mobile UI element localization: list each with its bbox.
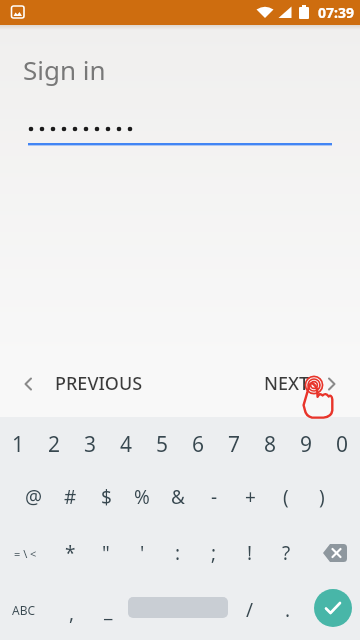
button[interactable]: 1 (0, 417, 36, 471)
button[interactable]: ? (268, 526, 304, 580)
button[interactable]: 2 (36, 417, 72, 471)
button[interactable]: ( (268, 470, 304, 524)
staticText: ; (211, 540, 217, 566)
staticText: ABC (12, 602, 36, 618)
staticText: % (134, 484, 150, 510)
staticText: ! (247, 540, 253, 566)
button[interactable]: 9 (288, 417, 324, 471)
staticText: . (285, 597, 291, 623)
staticText: 2 (48, 430, 61, 459)
button[interactable]: @ (16, 470, 52, 524)
staticText: / (246, 597, 254, 623)
button[interactable]: & (160, 470, 196, 524)
staticText: : (175, 540, 181, 566)
staticText: 0 (336, 430, 349, 459)
button[interactable]: 8 (252, 417, 288, 471)
button[interactable]: = \ < (0, 526, 50, 580)
button[interactable]: , (54, 586, 90, 640)
staticText: 5 (156, 430, 169, 459)
staticText: 1 (12, 430, 25, 459)
button[interactable]: NEXT (264, 371, 338, 396)
button[interactable] (128, 597, 228, 618)
staticText: 07:39 (318, 3, 354, 22)
staticText: ? (282, 540, 291, 566)
staticText: ' (140, 540, 145, 566)
staticText: 9 (300, 430, 313, 459)
staticText: & (171, 484, 185, 510)
staticText: $ (101, 484, 112, 510)
button[interactable]: 7 (216, 417, 252, 471)
button[interactable]: * (52, 526, 88, 580)
button[interactable]: 3 (72, 417, 108, 471)
staticText: ( (283, 484, 289, 510)
staticText: # (64, 484, 77, 510)
button[interactable]: 5 (144, 417, 180, 471)
button[interactable]: % (124, 470, 160, 524)
staticText: , (69, 600, 75, 626)
button[interactable]: _ (90, 583, 126, 637)
staticText: ) (319, 484, 325, 510)
button[interactable]: ; (196, 526, 232, 580)
staticText: 7 (228, 430, 241, 459)
button[interactable]: " (88, 526, 124, 580)
staticText: 4 (120, 430, 133, 459)
staticText: Sign in (23, 52, 106, 87)
button[interactable]: / (232, 583, 268, 637)
staticText: " (102, 540, 110, 566)
staticText: NEXT (264, 371, 310, 396)
staticText: 8 (264, 430, 277, 459)
staticText: = \ < (14, 546, 37, 561)
staticText: + (245, 484, 256, 510)
button[interactable]: # (52, 470, 88, 524)
staticText: _ (104, 597, 113, 623)
button[interactable] (20, 110, 340, 155)
staticText: 6 (192, 430, 205, 459)
button[interactable]: : (160, 526, 196, 580)
staticText: @ (25, 484, 43, 510)
button[interactable]: 4 (108, 417, 144, 471)
button[interactable]: - (196, 470, 232, 524)
button[interactable]: ABC (0, 583, 48, 637)
staticText: 3 (84, 430, 97, 459)
staticText: * (65, 540, 76, 566)
button[interactable]: . (270, 583, 306, 637)
button[interactable]: ' (124, 526, 160, 580)
button[interactable]: 6 (180, 417, 216, 471)
button[interactable]: ! (232, 526, 268, 580)
button[interactable]: 0 (324, 417, 360, 471)
button[interactable]: PREVIOUS (22, 371, 143, 396)
button[interactable] (314, 589, 352, 627)
button[interactable]: + (232, 470, 268, 524)
button[interactable] (310, 526, 360, 580)
button[interactable]: ) (304, 470, 340, 524)
staticText: PREVIOUS (55, 371, 143, 396)
staticText: - (211, 484, 218, 510)
button[interactable]: $ (88, 470, 124, 524)
